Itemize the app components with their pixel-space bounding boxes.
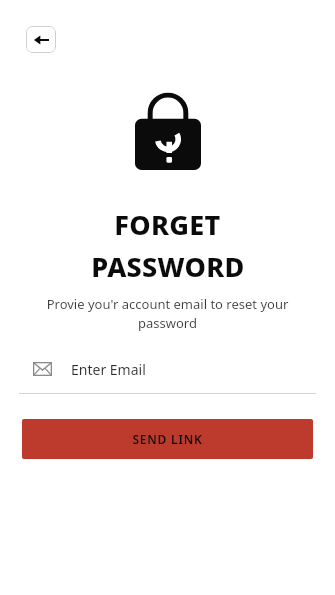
- staticText: SEND LINK: [132, 431, 203, 447]
- staticText: Enter Email: [71, 360, 146, 379]
- staticText: PASSWORD: [91, 248, 245, 285]
- button[interactable]: Enter Email: [19, 352, 316, 394]
- staticText: FORGET: [114, 206, 221, 243]
- staticText: Provie you'r account email to reset your…: [30, 295, 305, 332]
- button[interactable]: Back: [26, 26, 56, 53]
- button[interactable]: SEND LINK: [22, 419, 313, 459]
